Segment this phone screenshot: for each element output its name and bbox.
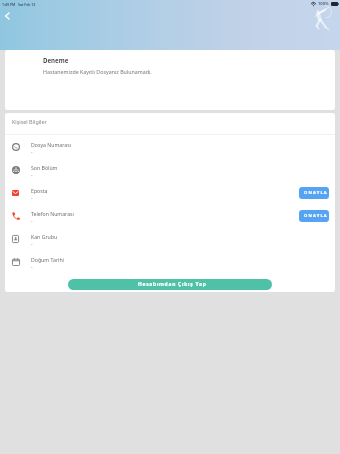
- button[interactable]: Son Bölüm: [5, 158, 335, 181]
- button[interactable]: Hesabımdan Çıkış Yap: [68, 279, 272, 290]
- button[interactable]: ONAYLA: [299, 187, 329, 199]
- staticText: -: [31, 195, 33, 201]
- staticText: Deneme: [43, 56, 69, 64]
- staticText: -: [31, 264, 33, 270]
- staticText: Doğum Tarihi: [31, 256, 64, 263]
- staticText: -: [31, 149, 33, 155]
- staticText: Kan Grubu: [31, 233, 58, 240]
- button[interactable]: Back: [1, 10, 13, 22]
- staticText: 1:49 PM: [2, 2, 16, 7]
- staticText: Hastanemizde Kayıtlı Dosyanız Bulunamadı…: [43, 68, 152, 75]
- staticText: Son Bölüm: [31, 164, 58, 171]
- button[interactable]: Kan Grubu: [5, 227, 335, 250]
- staticText: Telefon Numarası: [31, 210, 74, 217]
- button[interactable]: Telefon Numarası: [5, 204, 335, 227]
- staticText: Sat Feb 13: [18, 2, 36, 7]
- staticText: Kişisel Bilgiler: [12, 118, 47, 125]
- staticText: ONAYLA: [304, 190, 328, 196]
- staticText: -: [31, 172, 33, 178]
- button[interactable]: Eposta: [5, 181, 335, 204]
- staticText: -: [31, 218, 33, 224]
- staticText: -: [31, 241, 33, 247]
- staticText: ONAYLA: [304, 213, 328, 219]
- staticText: Dosya Numarası: [31, 141, 71, 148]
- staticText: 100%: [318, 1, 329, 7]
- button[interactable]: ONAYLA: [299, 210, 329, 222]
- button[interactable]: Dosya Numarası: [5, 135, 335, 158]
- staticText: Hesabımdan Çıkış Yap: [138, 281, 207, 288]
- staticText: Eposta: [31, 187, 48, 194]
- button[interactable]: Doğum Tarihi: [5, 250, 335, 273]
